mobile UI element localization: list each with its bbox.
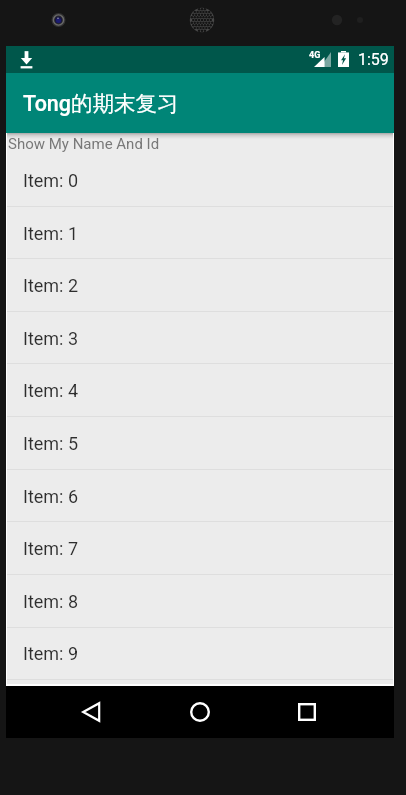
staticText: Item: 8 — [23, 591, 79, 612]
staticText: Tong的期末复习 — [23, 90, 179, 117]
staticText: Item: 3 — [23, 328, 79, 349]
button[interactable]: Home — [176, 688, 224, 736]
staticText: Item: 2 — [23, 275, 79, 296]
staticText: 1:59 — [358, 50, 389, 69]
staticText: Item: 7 — [23, 538, 79, 559]
button[interactable]: Item: 9 — [7, 627, 393, 680]
button[interactable]: Item: 4 — [7, 364, 393, 417]
staticText: Item: 1 — [23, 223, 79, 244]
button[interactable]: Item: 6 — [7, 470, 393, 523]
button[interactable]: Back — [68, 688, 116, 736]
button[interactable]: Show My Name And Id — [7, 133, 393, 154]
staticText: Item: 6 — [23, 486, 79, 507]
staticText: Item: 4 — [23, 380, 79, 401]
staticText: 4G — [309, 50, 321, 61]
staticText: Item: 5 — [23, 433, 79, 454]
button[interactable]: Item: 3 — [7, 312, 393, 365]
button[interactable]: Recent apps — [283, 688, 331, 736]
button[interactable]: Item: 7 — [7, 522, 393, 575]
staticText: Show My Name And Id — [8, 135, 160, 153]
button[interactable]: Item: 5 — [7, 417, 393, 470]
staticText: Item: 0 — [23, 170, 79, 191]
button[interactable]: Item: 0 — [7, 154, 393, 207]
button[interactable]: Item: 2 — [7, 259, 393, 312]
staticText: Item: 9 — [23, 643, 79, 664]
button[interactable]: Item: 1 — [7, 207, 393, 260]
button[interactable]: Item: 8 — [7, 575, 393, 628]
